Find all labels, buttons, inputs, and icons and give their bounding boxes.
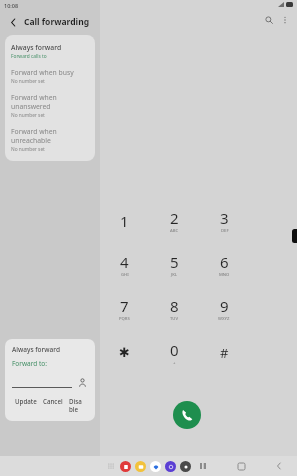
button[interactable]: App (180, 461, 191, 472)
button[interactable]: Call (173, 401, 201, 429)
staticText: Disable (69, 397, 85, 413)
staticText: 6 (220, 252, 229, 272)
button[interactable]: Choose contact (77, 377, 88, 388)
button[interactable]: 5 (149, 250, 199, 279)
staticText: ABC (170, 228, 179, 234)
button[interactable]: 4 (100, 250, 149, 279)
staticText: 3 (220, 208, 229, 228)
staticText: Forward when busy (11, 68, 74, 77)
staticText: PQRS (119, 316, 130, 322)
staticText: 8 (170, 296, 179, 316)
staticText: MNO (219, 272, 230, 278)
button[interactable]: Disable (66, 395, 88, 415)
staticText: # (220, 344, 229, 362)
staticText: Update (15, 397, 37, 405)
button[interactable]: 8 (149, 294, 199, 323)
staticText: ✱ (119, 345, 130, 360)
button[interactable]: Forward when unanswered (5, 89, 95, 123)
staticText: Forward when unanswered (11, 93, 89, 111)
button[interactable]: App (120, 461, 131, 472)
button[interactable]: Cancel (40, 395, 66, 407)
button[interactable]: 1 (100, 206, 149, 235)
staticText: Forward when unreachable (11, 127, 89, 145)
button[interactable]: Home (233, 458, 249, 474)
staticText: 1 (120, 211, 129, 231)
staticText: Call forwarding (24, 16, 90, 28)
staticText: Forward to: (12, 359, 48, 368)
button[interactable]: # (199, 338, 249, 367)
staticText: + (173, 360, 176, 366)
button[interactable] (12, 378, 72, 388)
staticText: Forward calls to (11, 53, 47, 60)
staticText: No number set (11, 112, 45, 119)
button[interactable]: 2 (149, 206, 199, 235)
staticText: TUV (170, 316, 179, 322)
staticText: No number set (11, 146, 45, 153)
button[interactable]: Search (261, 12, 277, 28)
staticText: Always forward (12, 345, 60, 354)
staticText: Cancel (43, 397, 63, 405)
button[interactable]: 6 (199, 250, 249, 279)
staticText: No number set (11, 78, 45, 85)
button[interactable]: App (150, 461, 161, 472)
button[interactable]: Back (6, 15, 20, 29)
button[interactable]: App (135, 461, 146, 472)
button[interactable]: Forward when busy (5, 64, 95, 89)
button[interactable]: Always forward (5, 39, 95, 64)
staticText: 2 (170, 208, 179, 228)
button[interactable]: Recents (195, 458, 211, 474)
staticText: 9 (220, 296, 229, 316)
button[interactable]: 9 (199, 294, 249, 323)
button[interactable]: Update (12, 395, 40, 407)
button[interactable]: Forward when unreachable (5, 123, 95, 157)
button[interactable]: 3 (199, 206, 249, 235)
staticText: 4 (120, 252, 129, 272)
staticText: WXYZ (218, 316, 230, 322)
button[interactable]: Back (271, 458, 287, 474)
button[interactable]: 7 (100, 294, 149, 323)
button[interactable]: App (165, 461, 176, 472)
button[interactable]: 0 (149, 338, 199, 367)
staticText: Always forward (11, 43, 62, 52)
staticText: 7 (120, 296, 129, 316)
staticText: 5 (170, 252, 179, 272)
staticText: 0 (170, 340, 179, 360)
staticText: GHI (121, 272, 129, 278)
staticText: DEF (221, 228, 229, 234)
staticText: 10:08 (4, 2, 19, 9)
staticText: JKL (171, 272, 178, 278)
button[interactable]: ✱ (100, 338, 149, 367)
button[interactable]: More options (277, 12, 293, 28)
